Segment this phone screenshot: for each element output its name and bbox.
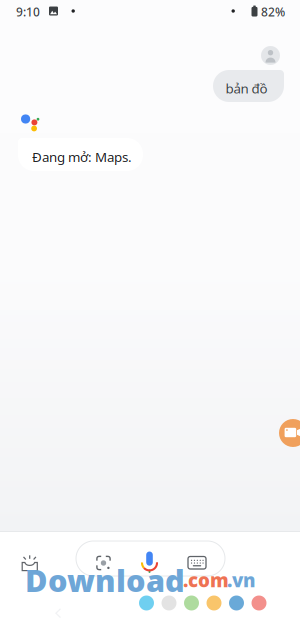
button[interactable]: Google Lens [96,555,111,570]
button[interactable]: Video call [279,419,300,447]
staticText: bản đồ [225,79,267,97]
button[interactable]: bản đồ [213,70,284,102]
staticText: 82% [261,4,285,20]
button[interactable]: Suggestion 5 [229,595,244,610]
staticText: .com [183,568,229,592]
button[interactable]: Back [54,608,64,620]
button[interactable]: Suggestion 1 [139,595,154,610]
button[interactable]: Snapshot [21,554,38,571]
staticText: Đang mở: Maps. [32,148,132,166]
staticText: 9:10 [16,4,40,20]
button[interactable]: Suggestion 3 [184,595,199,610]
button[interactable]: Suggestion 4 [206,595,221,610]
staticText: .vn [227,568,256,592]
button[interactable]: Suggestion 2 [161,595,176,610]
button[interactable]: Đang mở: Maps. [18,138,143,171]
staticText: Download [25,560,185,600]
button[interactable]: Ask Assistant [76,541,225,576]
button[interactable]: Voice input [141,551,157,573]
button[interactable]: Account [261,46,280,65]
button[interactable]: Suggestion 6 [251,595,266,610]
button[interactable]: Keyboard [188,556,206,569]
